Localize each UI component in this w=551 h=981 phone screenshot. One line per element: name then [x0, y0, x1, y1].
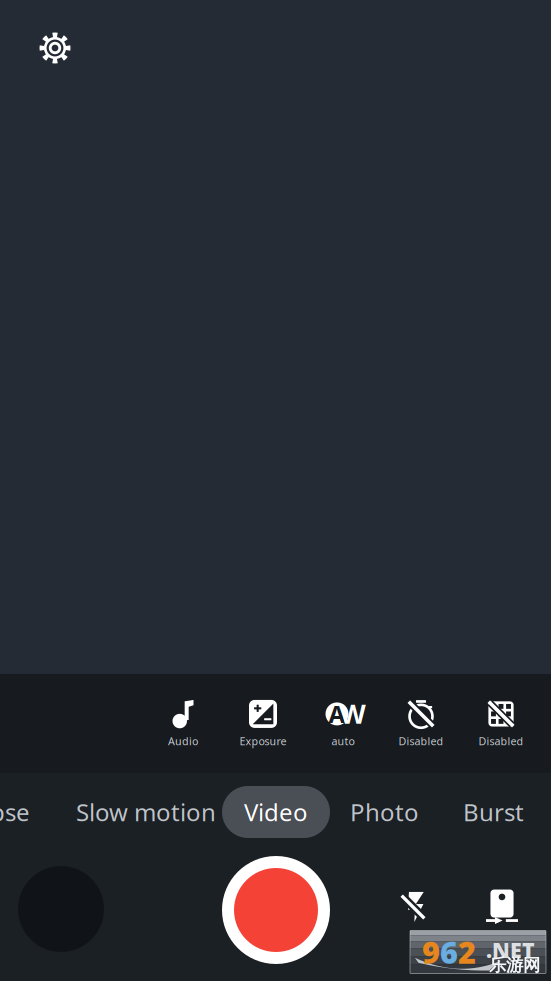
staticText: Photo [350, 796, 419, 828]
staticText: 2 [458, 931, 476, 972]
staticText: Disabled [398, 734, 443, 748]
staticText: 9 [422, 931, 440, 972]
staticText: Video [244, 796, 308, 828]
button[interactable]: A [303, 674, 383, 773]
staticText: auto [331, 734, 354, 748]
staticText: Time lapse [0, 796, 30, 828]
button[interactable]: Disabled [461, 674, 541, 773]
staticText: 乐游网 [489, 954, 540, 976]
staticText: Burst [463, 796, 524, 828]
button[interactable]: Flash off [380, 872, 446, 942]
button[interactable]: Exposure [223, 674, 303, 773]
button[interactable]: Slow motion [76, 786, 216, 838]
button[interactable]: Time lapse [0, 786, 30, 838]
button[interactable]: Disabled [381, 674, 461, 773]
staticText: Disabled [478, 734, 523, 748]
button[interactable]: Burst [463, 786, 524, 838]
button[interactable]: Video [222, 786, 330, 838]
staticText: Exposure [239, 734, 286, 748]
button[interactable]: Switch camera [469, 872, 535, 942]
staticText: 6 [440, 931, 458, 972]
staticText: .NET [486, 935, 535, 964]
staticText: A [328, 698, 345, 730]
button[interactable]: Photo [350, 786, 419, 838]
button[interactable]: Record video [220, 854, 332, 966]
staticText: Slow motion [76, 796, 216, 828]
button[interactable]: Audio [143, 674, 223, 773]
button[interactable]: Gallery [9, 857, 113, 961]
staticText: W [340, 696, 366, 731]
button[interactable]: Settings [26, 19, 84, 77]
staticText: Audio [168, 734, 198, 748]
